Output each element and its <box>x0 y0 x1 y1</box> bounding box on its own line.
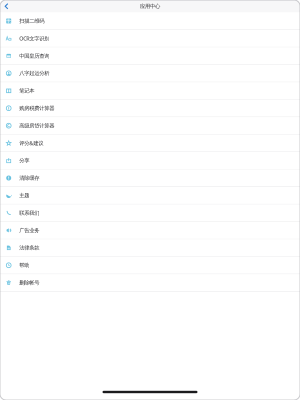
button[interactable]: 评分&建议 <box>0 135 300 152</box>
button[interactable]: 帮助 <box>0 257 300 274</box>
staticText: 购房税费计算器 <box>19 105 54 111</box>
button[interactable]: 主题 <box>0 187 300 204</box>
staticText: 主题 <box>19 192 29 199</box>
staticText: 清除缓存 <box>19 175 39 181</box>
staticText: 删除帐号 <box>19 279 39 286</box>
button[interactable]: 购房税费计算器 <box>0 100 300 117</box>
staticText: 高级房贷计算器 <box>19 122 54 129</box>
button[interactable]: Back <box>0 0 13 12</box>
button[interactable]: 删除帐号 <box>0 274 300 292</box>
button[interactable]: 扫描二维码 <box>0 12 300 30</box>
button[interactable]: 联系我们 <box>0 204 300 222</box>
button[interactable]: 八字起运分析 <box>0 65 300 82</box>
button[interactable]: 分享 <box>0 152 300 169</box>
staticText: 八字起运分析 <box>19 70 49 77</box>
staticText: 帮助 <box>19 262 29 269</box>
staticText: 广告业务 <box>19 227 39 234</box>
staticText: 笔记本 <box>19 87 34 94</box>
staticText: 扫描二维码 <box>19 18 44 24</box>
staticText: 应用中心 <box>140 3 160 10</box>
staticText: 法律条款 <box>19 244 39 251</box>
button[interactable]: 笔记本 <box>0 82 300 100</box>
button[interactable]: OCR文字识别 <box>0 30 300 47</box>
staticText: 评分&建议 <box>19 140 43 147</box>
staticText: OCR文字识别 <box>19 35 49 42</box>
staticText: 中国皇历查询 <box>19 53 49 59</box>
staticText: 联系我们 <box>19 210 39 216</box>
button[interactable]: 法律条款 <box>0 239 300 257</box>
button[interactable]: 高级房贷计算器 <box>0 117 300 135</box>
button[interactable]: 中国皇历查询 <box>0 47 300 65</box>
staticText: 分享 <box>19 157 29 164</box>
button[interactable]: 广告业务 <box>0 222 300 239</box>
button[interactable]: 清除缓存 <box>0 169 300 187</box>
